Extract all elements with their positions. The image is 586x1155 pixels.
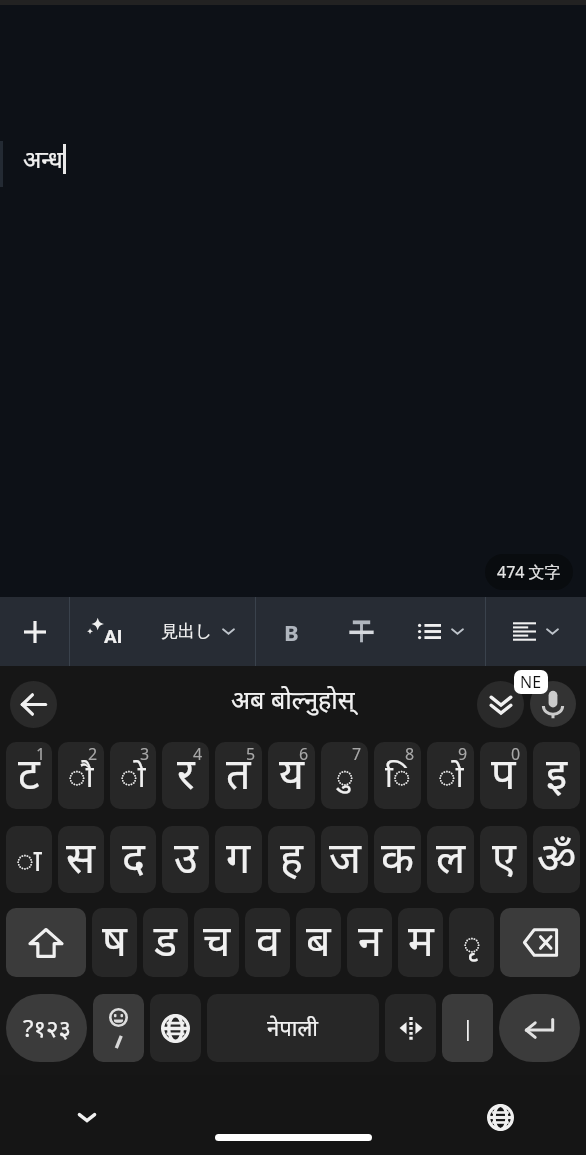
button[interactable]: ग [215, 826, 262, 893]
button[interactable]: Expand [477, 681, 524, 728]
button[interactable]: इ [533, 742, 580, 809]
button[interactable]: ो [110, 742, 156, 809]
staticText: ो [438, 755, 464, 796]
staticText: ृ [463, 922, 481, 963]
staticText: उ [174, 827, 198, 886]
button[interactable]: ड [143, 908, 188, 977]
staticText: ल [436, 827, 466, 886]
button[interactable]: | [442, 994, 493, 1062]
button[interactable]: Enter [499, 994, 580, 1062]
staticText: ब [306, 910, 331, 969]
staticText: क [381, 827, 415, 886]
staticText: AI [104, 625, 123, 647]
staticText: र [177, 743, 195, 802]
staticText: 5 [246, 743, 256, 765]
staticText: म [408, 910, 434, 969]
staticText: | [462, 1014, 474, 1043]
staticText: 見出し [161, 621, 213, 642]
staticText: त [226, 743, 251, 802]
button[interactable]: स [58, 826, 104, 893]
staticText: ज [329, 827, 361, 886]
button[interactable]: न [347, 908, 392, 977]
button[interactable]: ु [321, 742, 368, 809]
staticText: 7 [352, 743, 362, 765]
staticText: ?१२३ [23, 1011, 71, 1044]
button[interactable]: AI assist [70, 597, 140, 666]
staticText: ौ [68, 755, 94, 796]
button[interactable]: Strikethrough [326, 597, 396, 666]
button[interactable]: ौ [58, 742, 104, 809]
button[interactable]: ि [374, 742, 421, 809]
staticText: ड [154, 910, 178, 969]
button[interactable]: ो [427, 742, 474, 809]
staticText: 2 [88, 743, 98, 765]
staticText: स [66, 827, 96, 886]
staticText: ा [16, 839, 42, 880]
button[interactable]: ल [427, 826, 474, 893]
button[interactable]: य [268, 742, 315, 809]
button[interactable]: Bold [256, 597, 326, 666]
button[interactable]: Back [10, 681, 57, 728]
button[interactable]: Shift [6, 908, 86, 977]
button[interactable]: Switch input method [483, 1100, 517, 1134]
button[interactable]: ब [296, 908, 341, 977]
button[interactable]: क [374, 826, 421, 893]
button[interactable]: ?१२३ [6, 994, 87, 1062]
button[interactable]: Insert [0, 597, 69, 666]
button[interactable]: र [162, 742, 209, 809]
button[interactable]: द [110, 826, 156, 893]
staticText: 4 [193, 743, 203, 765]
staticText: B [284, 617, 299, 647]
staticText: च [203, 910, 231, 969]
staticText: ि [385, 755, 411, 796]
staticText: 8 [405, 743, 415, 765]
button[interactable]: Emoji [93, 994, 144, 1062]
button[interactable]: Change keyboard [150, 994, 201, 1062]
button[interactable]: 見出し [140, 597, 255, 666]
staticText: 3 [140, 743, 150, 765]
button[interactable]: Move cursor [385, 994, 436, 1062]
staticText: 474 文字 [497, 561, 561, 583]
staticText: ग [226, 827, 251, 886]
button[interactable]: Backspace [500, 908, 580, 977]
staticText: 9 [458, 743, 468, 765]
staticText: इ [546, 743, 568, 802]
button[interactable]: व [245, 908, 290, 977]
button[interactable]: उ [162, 826, 209, 893]
button[interactable]: ॐ [533, 826, 580, 893]
staticText: प [491, 743, 516, 802]
staticText: य [279, 743, 304, 802]
button[interactable]: च [194, 908, 239, 977]
button[interactable]: म [398, 908, 443, 977]
button[interactable]: Voice input [530, 681, 576, 727]
staticText: ह [280, 827, 303, 886]
button[interactable]: त [215, 742, 262, 809]
button[interactable]: ह [268, 826, 315, 893]
button[interactable]: नेपाली [207, 994, 379, 1062]
staticText: ए [492, 827, 516, 886]
staticText: अन्ध [23, 142, 63, 175]
staticText: द [122, 827, 145, 886]
button[interactable]: ृ [449, 908, 494, 977]
button[interactable]: ट [6, 742, 52, 809]
button[interactable]: ए [480, 826, 527, 893]
staticText: ट [18, 743, 40, 802]
button[interactable]: प [480, 742, 527, 809]
staticText: NE [520, 671, 542, 693]
staticText: ॐ [537, 827, 577, 886]
staticText: 0 [511, 743, 521, 765]
button[interactable]: Hide keyboard [70, 1100, 104, 1134]
staticText: नेपाली [267, 1012, 319, 1042]
staticText: ु [336, 755, 354, 796]
staticText: व [256, 910, 280, 969]
button[interactable] [396, 597, 485, 666]
staticText: ो [120, 755, 146, 796]
staticText: ष [102, 910, 127, 969]
button[interactable]: 474 文字 [485, 554, 573, 590]
staticText: 1 [36, 743, 46, 765]
button[interactable]: ष [92, 908, 137, 977]
button[interactable]: ा [6, 826, 52, 893]
button[interactable]: ज [321, 826, 368, 893]
button[interactable] [486, 597, 586, 666]
staticText: 6 [299, 743, 309, 765]
